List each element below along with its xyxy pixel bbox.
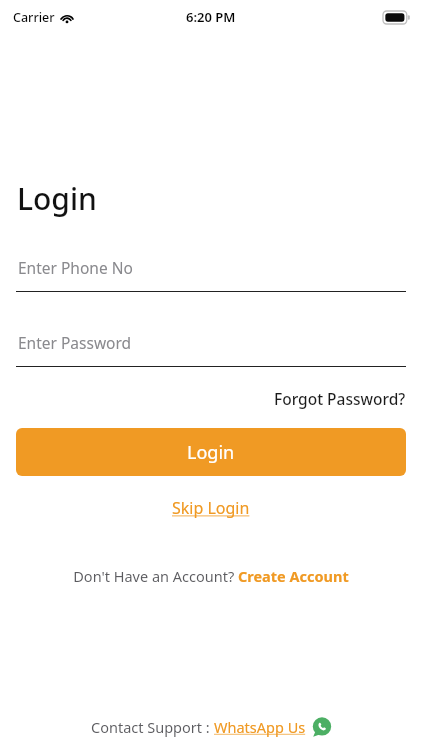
staticText: WhatsApp Us	[214, 717, 306, 737]
staticText: Carrier	[13, 9, 55, 26]
staticText: Forgot Password?	[274, 388, 406, 409]
staticText: Don't Have an Account? Create Account	[73, 566, 349, 586]
staticText: Skip Login	[172, 497, 250, 519]
button[interactable]: WhatsApp Us	[214, 715, 332, 739]
staticText: Contact Support :	[91, 717, 214, 737]
staticText: Login	[17, 178, 97, 219]
other: WhatsApp	[312, 717, 332, 737]
staticText: Enter Phone No	[18, 257, 133, 278]
staticText: Enter Password	[18, 332, 132, 353]
button[interactable]: Skip Login	[168, 493, 254, 523]
button[interactable]: Don't Have an Account? Create Account	[73, 563, 349, 589]
button[interactable]: Forgot Password?	[274, 386, 406, 411]
staticText: Login	[187, 440, 235, 465]
button[interactable]: Enter Password	[16, 326, 406, 367]
button[interactable]: Enter Phone No	[16, 251, 406, 292]
staticText: 6:20 PM	[186, 8, 236, 26]
button[interactable]: Login	[16, 428, 406, 476]
